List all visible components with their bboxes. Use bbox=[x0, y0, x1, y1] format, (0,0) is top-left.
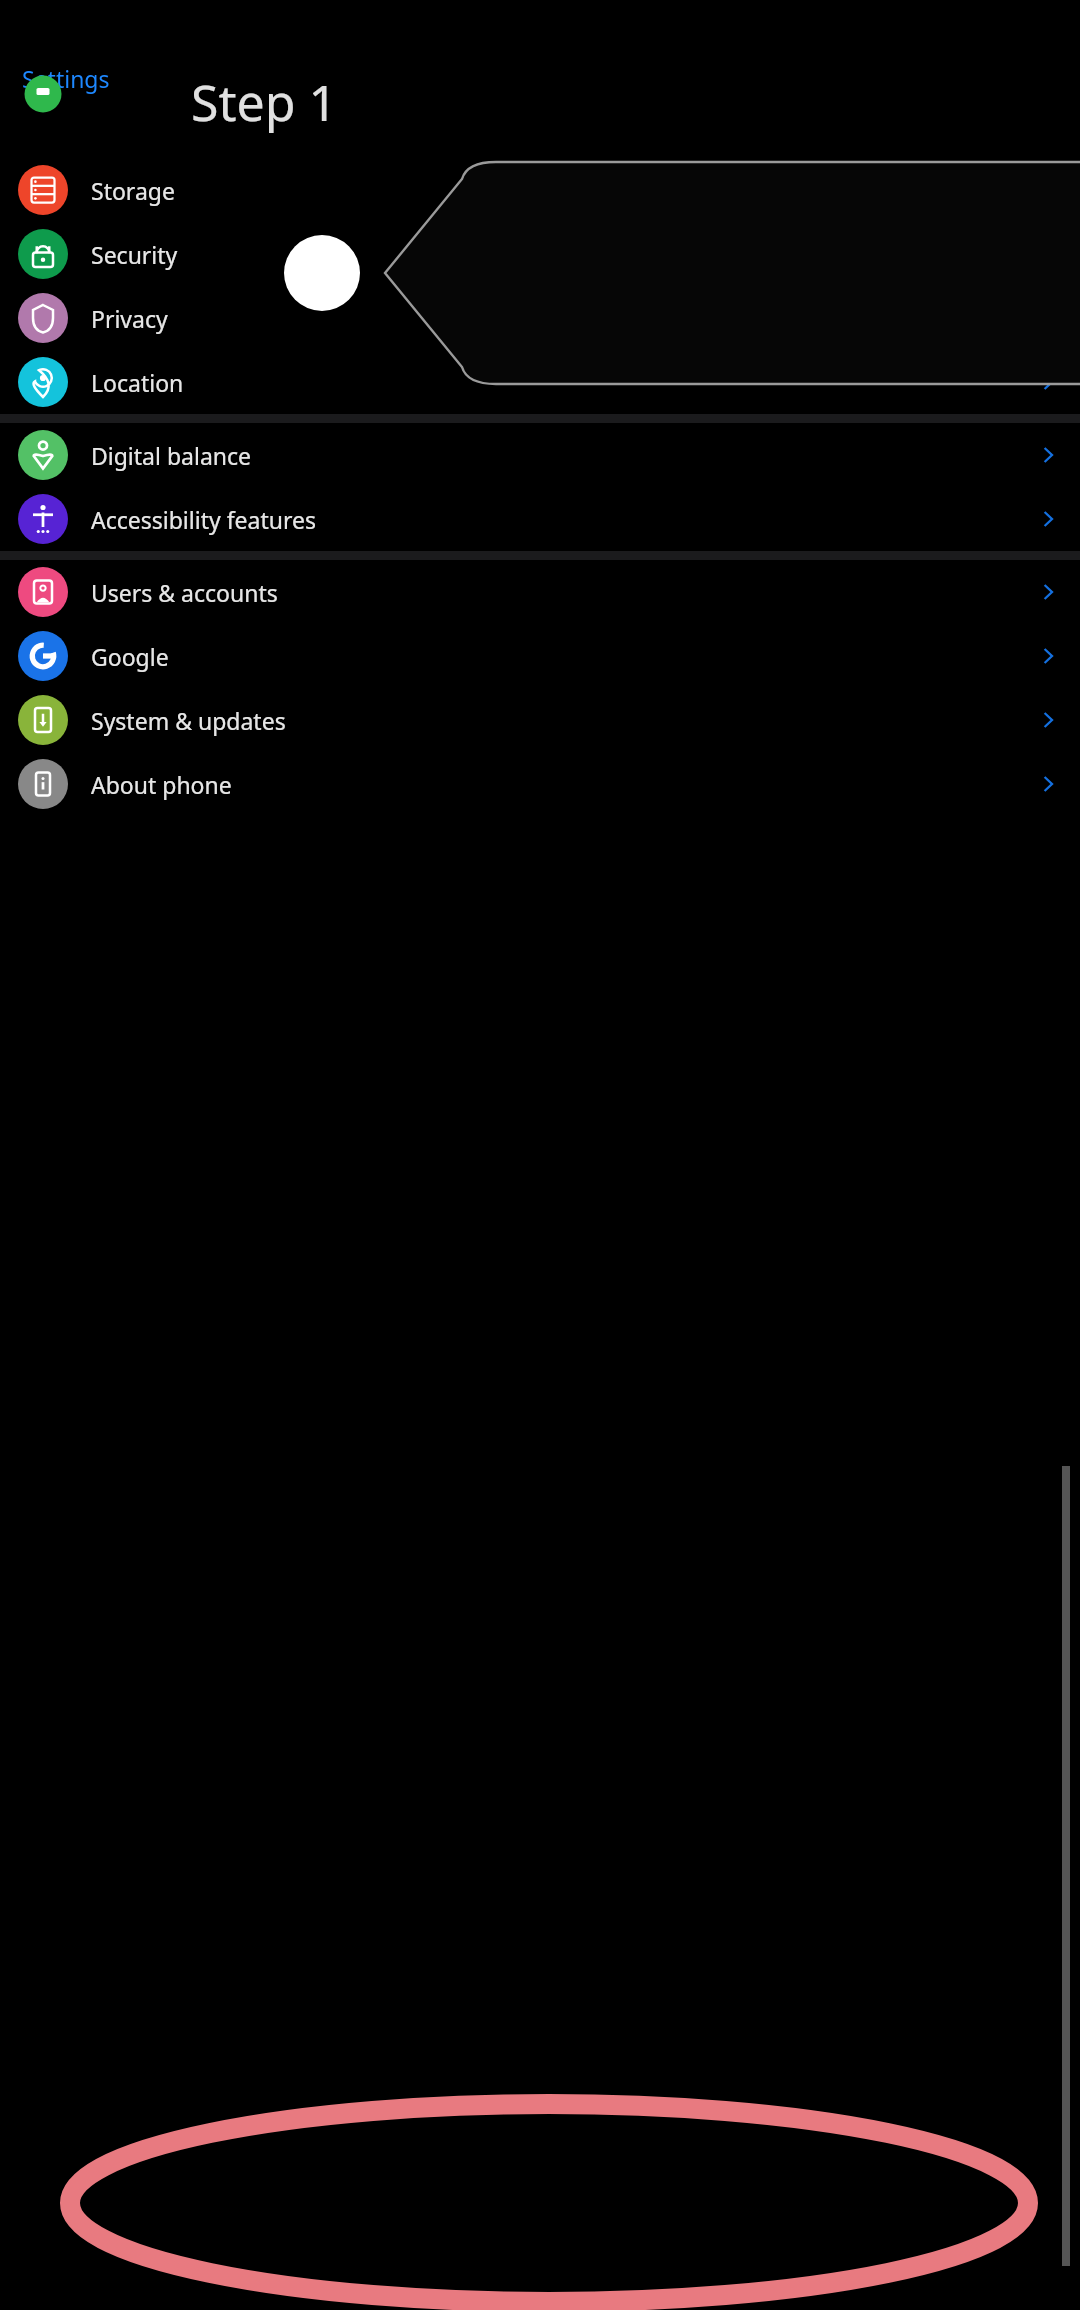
button[interactable]: System & updates bbox=[0, 688, 1080, 752]
other: Open Users & accounts bbox=[1038, 582, 1058, 602]
staticText: Digital balance bbox=[91, 440, 252, 471]
staticText: Google bbox=[91, 641, 169, 672]
button[interactable]: Users & accounts bbox=[0, 560, 1080, 624]
other: Open About phone bbox=[1038, 774, 1058, 794]
other: Open Digital balance bbox=[1038, 445, 1058, 465]
staticText: System & updates bbox=[91, 705, 286, 736]
button[interactable]: About phone bbox=[0, 752, 1080, 816]
other: Open Location bbox=[1038, 372, 1058, 392]
staticText: About phone bbox=[91, 769, 232, 800]
button[interactable]: Google bbox=[0, 624, 1080, 688]
other: Open Accessibility features bbox=[1038, 509, 1058, 529]
staticText: Users & accounts bbox=[91, 577, 278, 608]
staticText: Accessibility features bbox=[91, 504, 317, 535]
button[interactable]: Storage bbox=[0, 158, 1080, 222]
staticText: Location bbox=[91, 367, 184, 398]
staticText: Security bbox=[91, 239, 178, 270]
other: Open System & updates bbox=[1038, 710, 1058, 730]
button[interactable]: Security bbox=[0, 222, 1080, 286]
button[interactable]: Accessibility features bbox=[0, 487, 1080, 551]
staticText: Step 1 bbox=[191, 68, 338, 136]
button[interactable]: Privacy bbox=[0, 286, 1080, 350]
staticText: Settings bbox=[22, 63, 110, 94]
staticText: Privacy bbox=[91, 303, 168, 334]
button[interactable]: Location bbox=[0, 350, 1080, 414]
other: Open Google bbox=[1038, 646, 1058, 666]
button[interactable]: Digital balance bbox=[0, 423, 1080, 487]
staticText: Storage bbox=[91, 175, 175, 206]
